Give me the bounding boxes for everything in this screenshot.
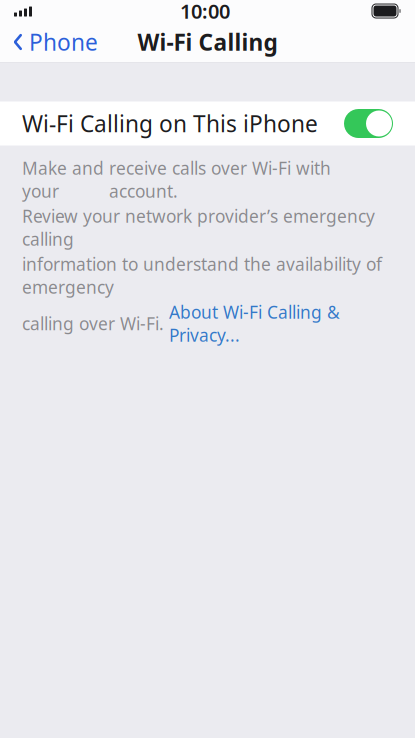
button[interactable]: calling over Wi-Fi. bbox=[22, 301, 340, 347]
staticText: Make and receive calls over Wi-Fi with y… bbox=[22, 156, 331, 202]
staticText: About Wi-Fi Calling & Privacy... bbox=[169, 301, 340, 347]
button[interactable]: Phone bbox=[0, 21, 98, 63]
staticText: 10:00 bbox=[180, 0, 230, 24]
button[interactable]: Wi-Fi Calling on This iPhone bbox=[0, 101, 415, 145]
staticText: Wi-Fi Calling on This iPhone bbox=[22, 108, 318, 138]
staticText: calling over Wi-Fi. bbox=[22, 312, 169, 335]
staticText: Phone bbox=[29, 27, 98, 57]
staticText: Review your network provider’s emergency… bbox=[22, 204, 375, 250]
staticText: Wi-Fi Calling bbox=[137, 27, 277, 57]
staticText: information to understand the availabili… bbox=[22, 253, 382, 299]
